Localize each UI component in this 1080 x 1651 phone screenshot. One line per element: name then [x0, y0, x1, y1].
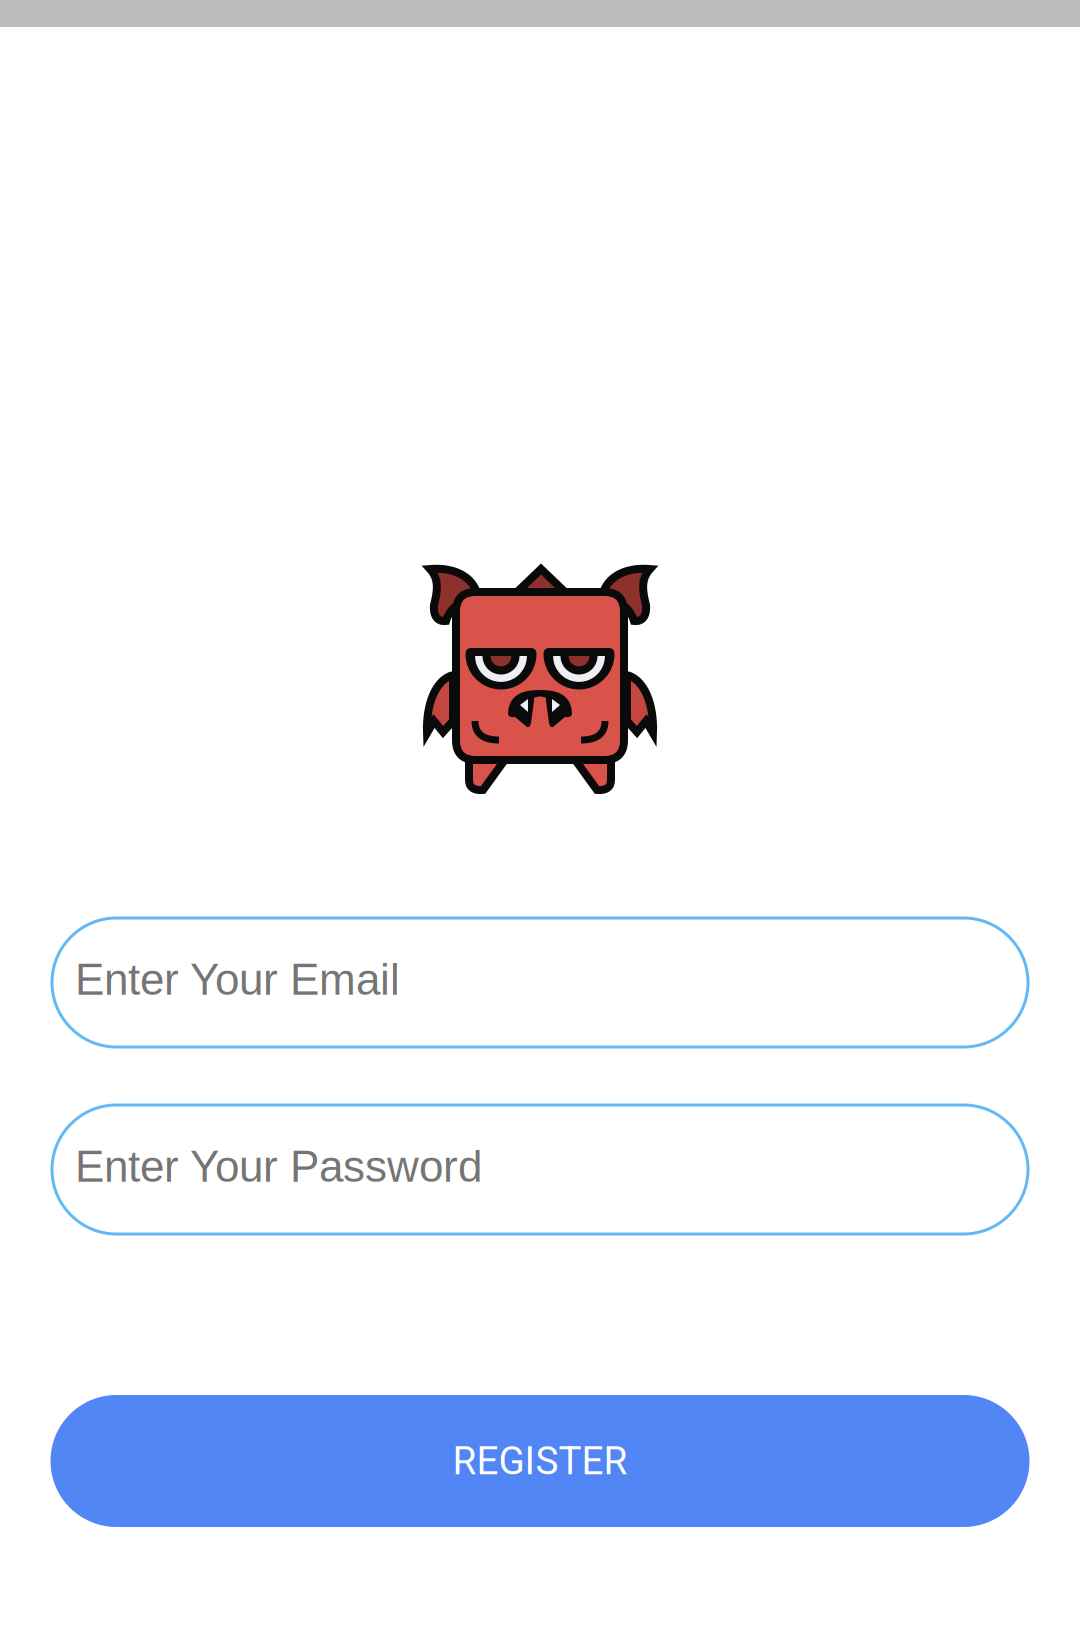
button[interactable]: Enter Your Password	[52, 1105, 1028, 1234]
button[interactable]: REGISTER	[50, 1395, 1029, 1527]
staticText: Enter Your Password	[75, 1142, 482, 1191]
staticText: REGISTER	[452, 1438, 627, 1484]
staticText: Enter Your Email	[75, 955, 400, 1004]
button[interactable]: Enter Your Email	[52, 918, 1028, 1047]
